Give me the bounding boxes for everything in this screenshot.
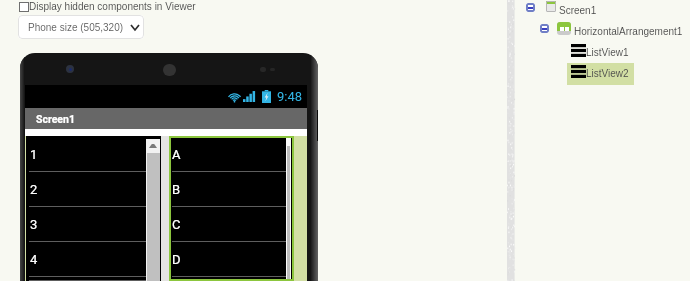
staticText: C bbox=[172, 217, 181, 232]
staticText: 3 bbox=[30, 217, 38, 232]
staticText: Screen1 bbox=[559, 5, 597, 16]
button[interactable] bbox=[540, 21, 658, 42]
button[interactable]: A bbox=[169, 136, 294, 281]
other: Resize panel bbox=[507, 0, 515, 281]
staticText: Display hidden components in Viewer bbox=[29, 1, 196, 12]
button[interactable]: Display hidden components in Viewer bbox=[19, 0, 196, 13]
staticText: D bbox=[172, 252, 181, 267]
staticText: E bbox=[172, 277, 180, 281]
staticText: HorizontalArrangement1 bbox=[574, 26, 683, 37]
button[interactable] bbox=[526, 0, 644, 21]
staticText: 2 bbox=[30, 182, 38, 197]
other: Collapse bbox=[526, 3, 535, 12]
button[interactable] bbox=[567, 63, 685, 84]
staticText: B bbox=[172, 182, 181, 197]
staticText: Screen1 bbox=[36, 113, 75, 125]
other: Choose preview size bbox=[131, 25, 139, 30]
staticText: A bbox=[172, 147, 181, 162]
other: Collapse bbox=[540, 24, 549, 33]
staticText: 1 bbox=[30, 147, 38, 162]
staticText: Phone size (505,320) bbox=[28, 22, 124, 33]
button[interactable]: Phone size (505,320) bbox=[18, 15, 144, 39]
staticText: 4 bbox=[30, 252, 38, 267]
staticText: 9:48 bbox=[277, 89, 303, 104]
staticText: ListView2 bbox=[586, 68, 629, 79]
staticText: 5 bbox=[30, 277, 38, 281]
staticText: ListView1 bbox=[586, 47, 629, 58]
button[interactable]: 1 bbox=[26, 136, 161, 281]
button[interactable] bbox=[567, 42, 685, 63]
